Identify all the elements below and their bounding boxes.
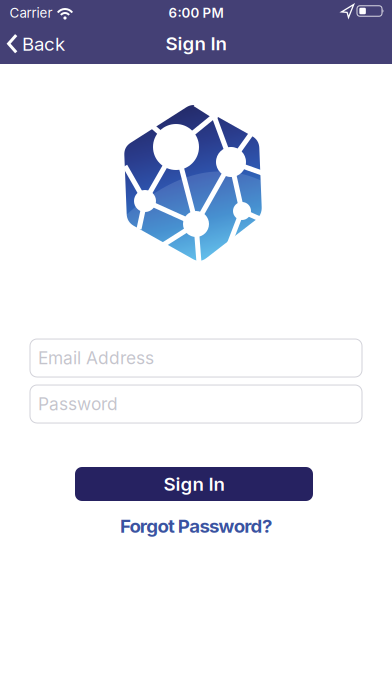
staticText: Email Address (38, 348, 154, 368)
staticText: Sign In (163, 473, 224, 495)
staticText: 6:00 PM (168, 5, 223, 21)
staticText: Forgot Password? (120, 515, 272, 537)
button[interactable]: Forgot Password? (120, 515, 272, 537)
staticText: Sign In (165, 32, 226, 54)
button[interactable]: Back (7, 33, 65, 55)
staticText: Password (38, 394, 118, 414)
staticText: Back (22, 33, 65, 55)
staticText: Carrier (9, 5, 52, 21)
button[interactable]: Sign In (75, 467, 313, 501)
